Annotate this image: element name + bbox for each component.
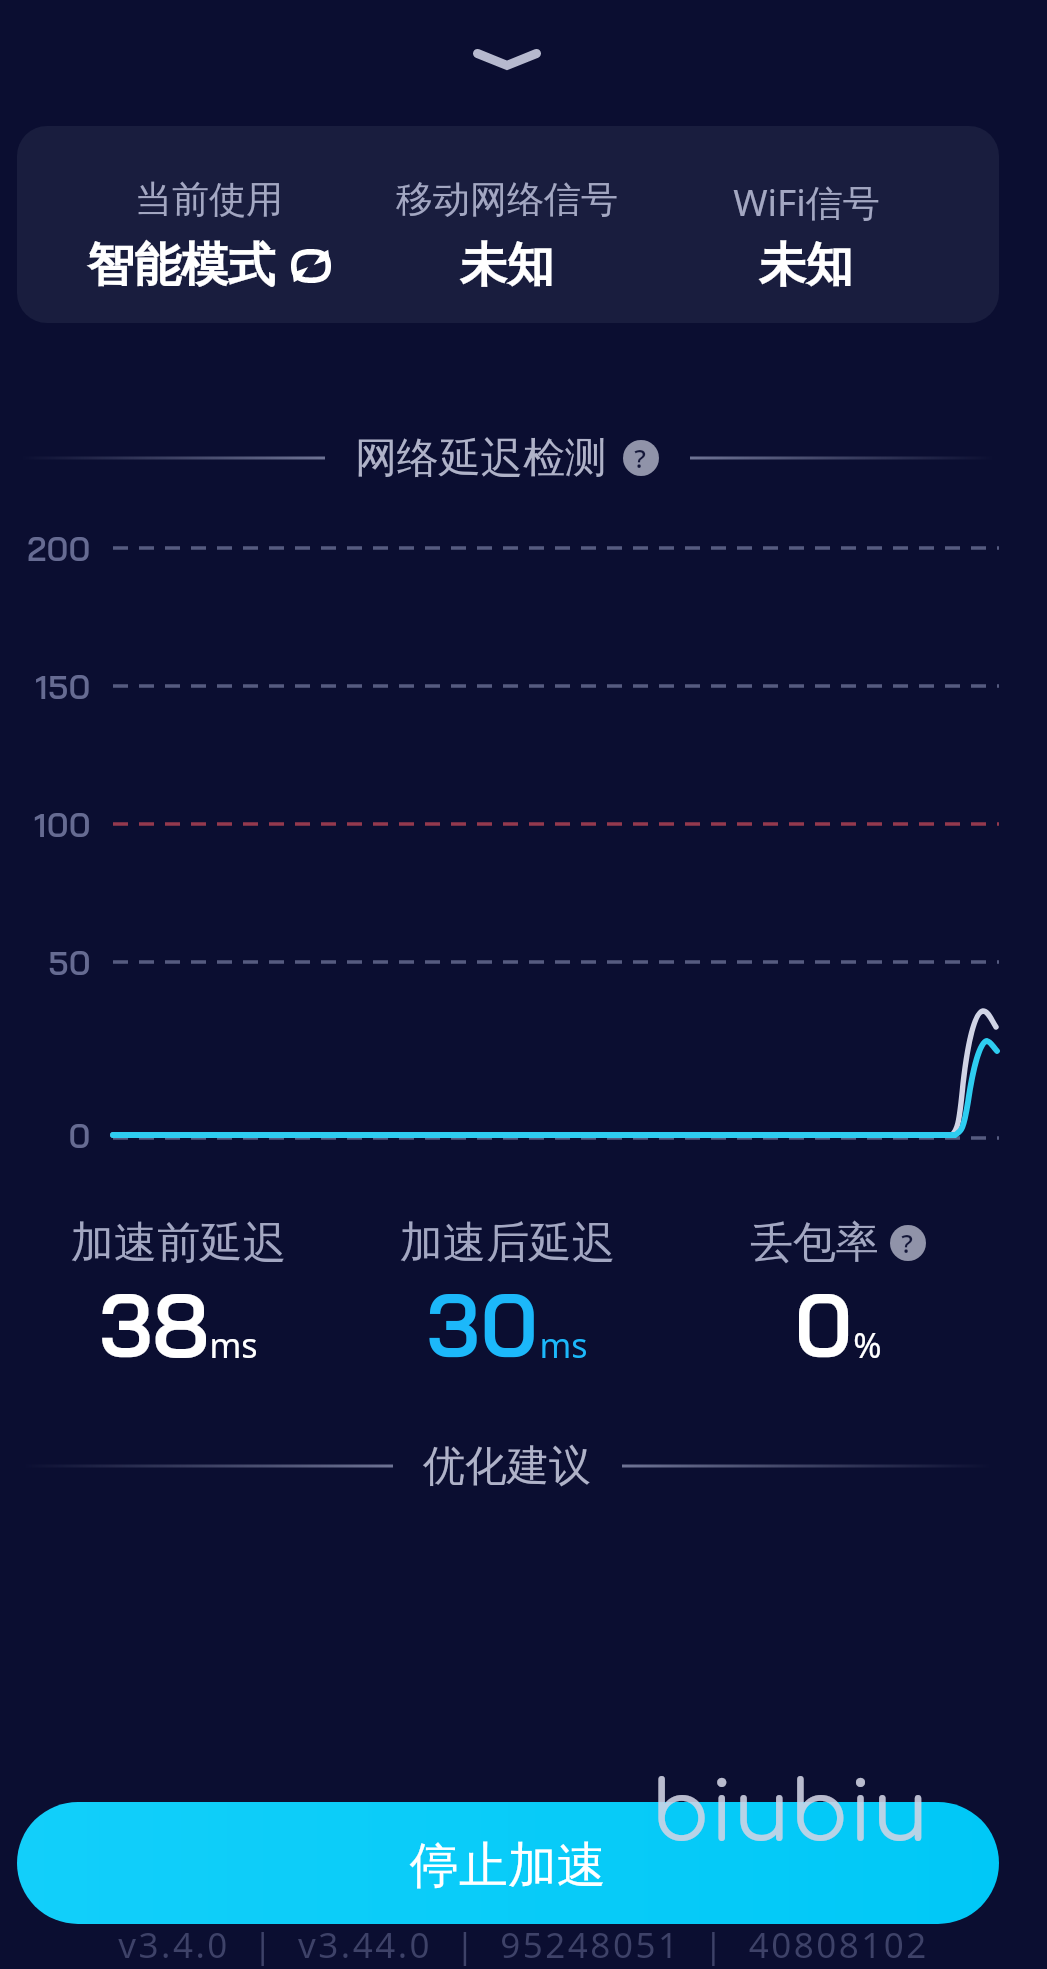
staticText: WiFi信号: [733, 176, 880, 227]
staticText: 150: [35, 666, 91, 707]
staticText: 38: [99, 1269, 209, 1379]
staticText: ?: [901, 1225, 913, 1260]
staticText: 加速前延迟: [71, 1216, 286, 1270]
staticText: 智能模式: [87, 236, 275, 295]
button[interactable]: Help: [623, 440, 659, 476]
staticText: 0: [68, 1115, 91, 1156]
staticText: 100: [34, 804, 91, 845]
staticText: 未知: [759, 236, 853, 295]
staticText: 0: [794, 1269, 853, 1379]
staticText: 200: [27, 528, 91, 569]
staticText: 网络延迟检测: [355, 432, 607, 485]
staticText: 丢包率: [750, 1216, 879, 1270]
button[interactable]: Help: [890, 1225, 926, 1261]
button[interactable]: Switch mode: [291, 249, 331, 283]
staticText: 当前使用: [135, 176, 283, 223]
staticText: %: [853, 1322, 882, 1368]
staticText: 未知: [460, 236, 554, 295]
staticText: biubiu: [651, 1768, 1047, 1861]
button[interactable]: 停止加速: [17, 1802, 999, 1924]
staticText: 30: [426, 1269, 539, 1379]
staticText: ms: [539, 1322, 588, 1368]
button[interactable]: 当前使用: [17, 126, 999, 323]
staticText: 停止加速: [410, 1835, 606, 1897]
staticText: 加速后延迟: [400, 1216, 615, 1270]
staticText: ms: [209, 1322, 258, 1368]
staticText: 移动网络信号: [396, 176, 618, 223]
button[interactable]: Collapse: [454, 21, 560, 97]
staticText: 50: [48, 942, 91, 983]
staticText: v3.4.0 | v3.44.0 | 95248051 | 40808102: [118, 1921, 929, 1969]
staticText: 优化建议: [423, 1440, 591, 1493]
staticText: ?: [634, 440, 646, 475]
